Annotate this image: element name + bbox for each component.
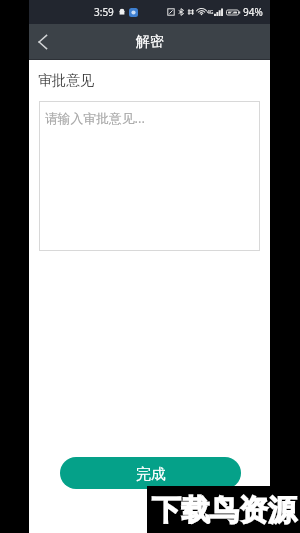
button[interactable]: Back (29, 24, 55, 60)
staticText: 下载鸟资源 (152, 492, 297, 529)
staticText: 94% (243, 5, 263, 19)
staticText: 请输入审批意见... (45, 109, 145, 126)
button[interactable]: 完成 (60, 457, 241, 489)
staticText: 审批意见 (38, 72, 94, 90)
staticText: 完成 (136, 465, 166, 484)
button[interactable]: 请输入审批意见... (39, 101, 260, 251)
staticText: 解密 (136, 33, 164, 51)
staticText: 4G (207, 9, 214, 16)
staticText: 3:59 (94, 5, 114, 19)
